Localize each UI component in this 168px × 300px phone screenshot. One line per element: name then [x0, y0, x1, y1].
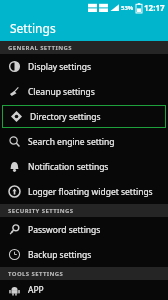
staticText: Password settings: [28, 224, 101, 236]
button[interactable]: Backup settings: [0, 242, 168, 267]
button[interactable]: Display settings: [0, 54, 168, 79]
staticText: Search engine setting: [28, 136, 115, 148]
button[interactable]: Directory settings: [2, 105, 166, 128]
button[interactable]: APP: [0, 280, 168, 300]
staticText: 53%: [121, 4, 134, 12]
button[interactable]: Cleanup settings: [0, 79, 168, 104]
staticText: Directory settings: [30, 111, 101, 123]
staticText: Backup settings: [28, 249, 92, 261]
staticText: Cleanup settings: [28, 86, 95, 98]
staticText: TOOLS SETTINGS: [8, 270, 64, 278]
staticText: GENERAL SETTINGS: [8, 44, 72, 52]
staticText: Settings: [10, 20, 56, 36]
button[interactable]: Password settings: [0, 217, 168, 242]
staticText: Logger floating widget settings: [28, 186, 153, 198]
staticText: Display settings: [28, 61, 91, 73]
staticText: 12:17: [144, 2, 165, 13]
button[interactable]: Notification settings: [0, 154, 168, 179]
button[interactable]: Logger floating widget settings: [0, 179, 168, 204]
staticText: Notification settings: [28, 161, 109, 173]
button[interactable]: Search engine setting: [0, 129, 168, 154]
staticText: APP: [28, 284, 44, 296]
staticText: SECURITY SETTINGS: [8, 207, 74, 215]
